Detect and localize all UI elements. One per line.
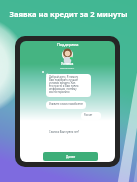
button[interactable]: Сколько Вам нужно лет? [46,129,90,137]
staticText: это просто и Вам нужна [49,84,79,87]
button[interactable]: Укажите сумму приобретений [46,101,86,109]
staticText: Далее [66,155,76,159]
staticText: Расчет [84,113,93,116]
staticText: Заявка на кредит за 2 минуты [9,9,128,19]
button[interactable]: Далее [43,152,98,161]
staticText: Консультант [60,66,75,69]
staticText: мы постараемся [49,90,70,93]
staticText: Добрый день, Я помогу [49,75,79,78]
button[interactable]: Добрый день, Я помогу [46,74,91,97]
staticText: Сколько Вам нужно лет? [49,130,80,133]
staticText: Поддержка [57,42,79,47]
staticText: Вам подобрать лучшие [49,78,79,81]
staticText: Ульяна [61,61,74,66]
staticText: информация, поэтому [49,87,77,90]
button[interactable]: Расчет [81,112,101,120]
staticText: условия кредита. Как [49,81,76,84]
staticText: Укажите сумму приобретений [49,102,83,105]
